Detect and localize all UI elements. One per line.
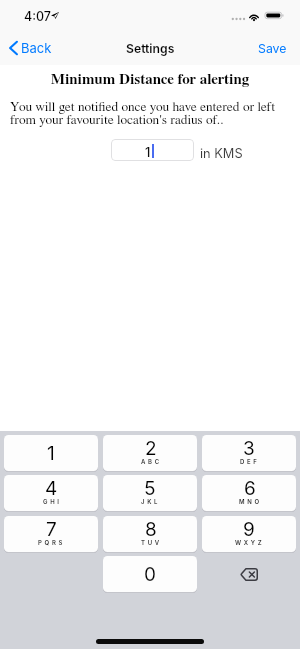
staticText: Minimum Distance for alerting xyxy=(0,72,300,87)
staticText: 7 xyxy=(46,518,57,541)
staticText: in KMS xyxy=(200,146,243,161)
staticText: DEF xyxy=(240,458,260,465)
staticText: 1 xyxy=(47,442,55,465)
staticText: 3 xyxy=(243,437,255,460)
button[interactable]: 7 xyxy=(4,516,98,552)
staticText: 8 xyxy=(145,518,157,541)
button[interactable]: 6 xyxy=(202,475,296,511)
staticText: 0 xyxy=(144,563,156,586)
button[interactable]: 5 xyxy=(103,475,197,511)
staticText: JKL xyxy=(141,498,161,505)
staticText: 5 xyxy=(144,477,156,500)
button[interactable]: 1 xyxy=(4,435,98,471)
staticText: You will get notified once you have ente… xyxy=(10,100,289,126)
button[interactable]: Backspace xyxy=(202,556,296,592)
staticText: ABC xyxy=(141,458,162,465)
staticText: 2 xyxy=(145,437,157,460)
button[interactable]: Back xyxy=(0,31,60,65)
staticText: Save xyxy=(258,41,287,56)
button[interactable]: 1 xyxy=(111,139,194,161)
staticText: 6 xyxy=(244,477,256,500)
button[interactable]: 2 xyxy=(103,435,197,471)
staticText: 9 xyxy=(243,518,255,541)
staticText: GHI xyxy=(43,498,62,505)
staticText: MNO xyxy=(239,498,262,505)
staticText: Settings xyxy=(126,41,175,56)
button[interactable]: 8 xyxy=(103,516,197,552)
staticText: 4 xyxy=(45,477,58,500)
button[interactable]: 9 xyxy=(202,516,296,552)
staticText: TUV xyxy=(141,539,162,546)
staticText: PQRS xyxy=(38,539,66,546)
button[interactable]: 3 xyxy=(202,435,296,471)
staticText: 4:07 xyxy=(24,9,51,24)
button[interactable]: 4 xyxy=(4,475,98,511)
staticText: WXYZ xyxy=(235,539,265,546)
staticText: 1 xyxy=(145,144,151,160)
button[interactable]: 0 xyxy=(103,556,197,592)
button[interactable]: Save xyxy=(242,31,300,65)
staticText: Back xyxy=(21,40,52,56)
